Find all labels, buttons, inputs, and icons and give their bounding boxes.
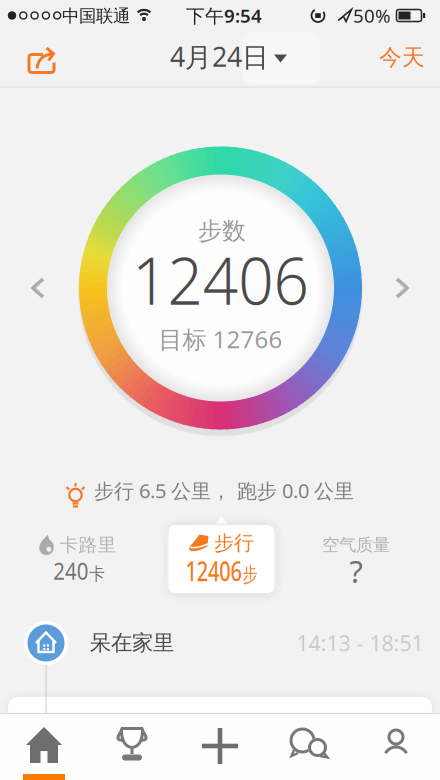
button[interactable] — [88, 713, 176, 780]
staticText: 呆在家里 — [90, 630, 174, 656]
staticText: 4月24日 — [170, 39, 269, 74]
staticText: 12406 — [125, 235, 315, 323]
staticText: 卡路里 — [59, 533, 116, 556]
button[interactable] — [27, 47, 56, 73]
button[interactable]: 卡路里 — [20, 512, 140, 602]
staticText: ? — [349, 551, 362, 591]
button[interactable] — [242, 32, 320, 84]
button[interactable]: 空气质量 — [296, 512, 416, 602]
button[interactable] — [352, 713, 440, 780]
staticText: 目标 12766 — [158, 323, 282, 355]
button[interactable] — [0, 713, 88, 780]
button[interactable]: 步行 — [167, 524, 275, 594]
staticText: 240 — [50, 556, 89, 586]
staticText: 下午9:54 — [186, 3, 262, 28]
staticText: 12406 — [173, 553, 248, 589]
staticText: 空气质量 — [322, 534, 390, 556]
button[interactable]: 4月24日 — [170, 39, 287, 74]
staticText: 步行 — [214, 531, 254, 555]
staticText: 14:13 - 18:51 — [296, 629, 423, 657]
staticText: 今天 — [379, 44, 425, 71]
button[interactable]: 今天 — [379, 44, 425, 71]
button[interactable] — [176, 713, 264, 780]
button[interactable] — [31, 277, 45, 299]
button[interactable] — [395, 277, 409, 299]
button[interactable]: 呆在家里 — [0, 610, 440, 676]
staticText: 50% — [353, 3, 391, 28]
staticText: 步 — [249, 562, 269, 587]
staticText: 步行 6.5 公里， 跑步 0.0 公里 — [94, 477, 354, 504]
staticText: 卡 — [90, 563, 107, 585]
button[interactable] — [264, 713, 352, 780]
staticText: 中国联通 — [62, 5, 130, 27]
staticText: 步数 — [198, 216, 246, 246]
